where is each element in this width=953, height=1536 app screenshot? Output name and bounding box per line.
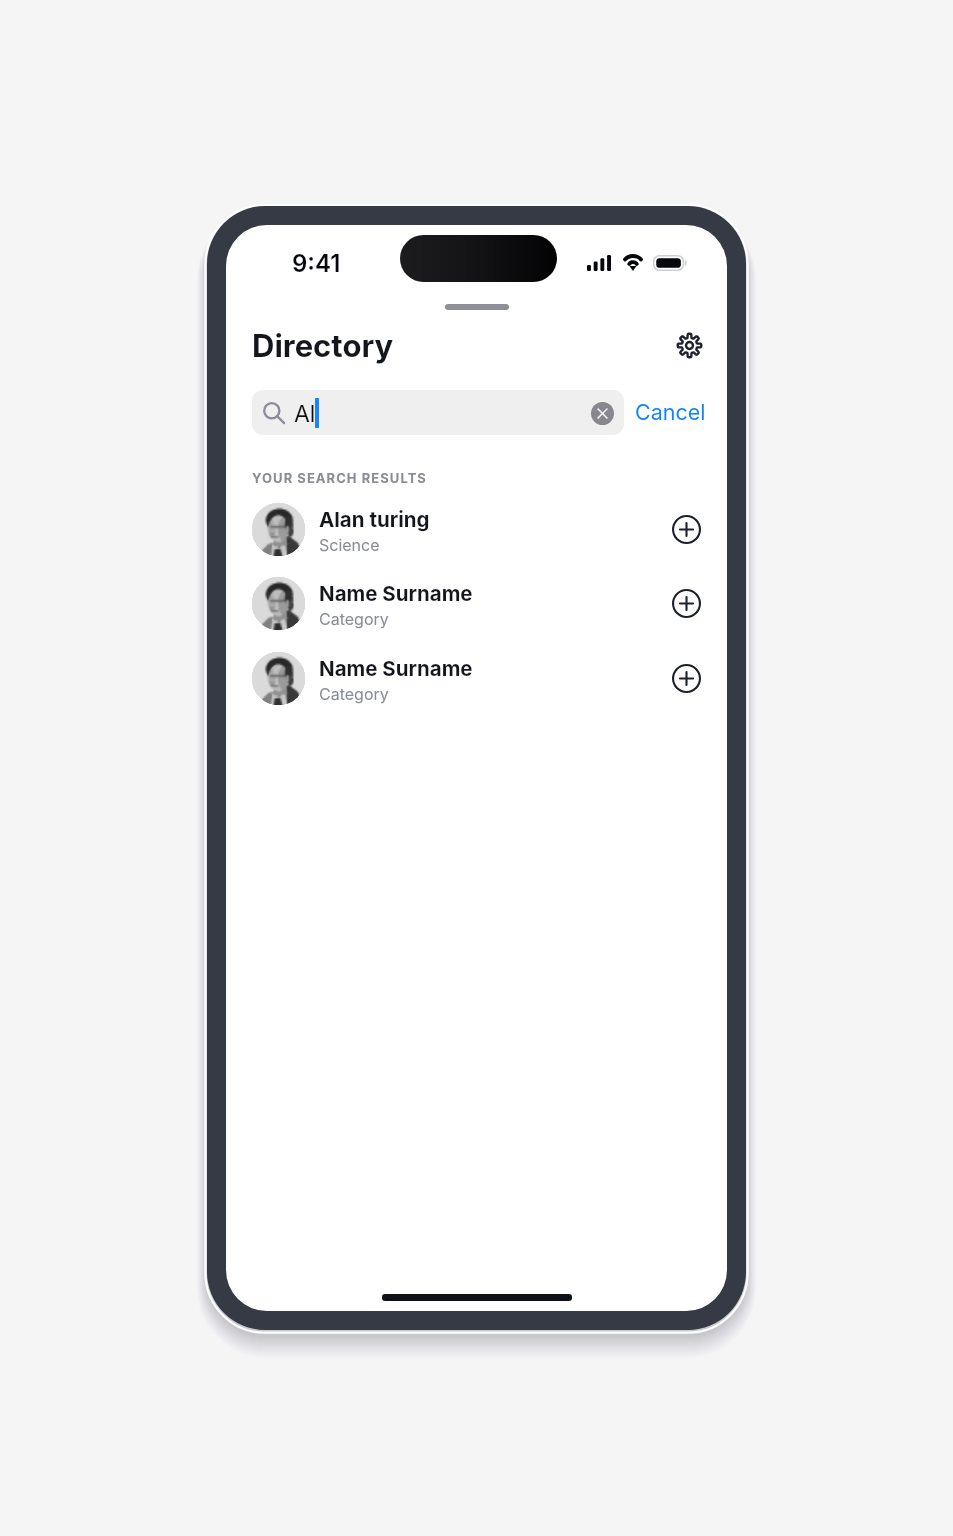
staticText: Directory bbox=[252, 327, 394, 365]
staticText: Name Surname bbox=[319, 581, 473, 606]
button[interactable]: Cancel bbox=[632, 393, 709, 431]
button[interactable]: Name Surname bbox=[226, 651, 727, 725]
button[interactable]: Al bbox=[252, 390, 624, 435]
staticText: Category bbox=[319, 609, 389, 628]
staticText: Cancel bbox=[635, 399, 706, 425]
staticText: Al bbox=[294, 400, 316, 428]
staticText: 9:41 bbox=[292, 249, 341, 278]
button[interactable]: Name Surname bbox=[226, 576, 727, 650]
button[interactable]: Clear search text bbox=[591, 402, 614, 425]
staticText: Name Surname bbox=[319, 656, 473, 681]
staticText: Category bbox=[319, 684, 389, 703]
button[interactable]: Add Name Surname bbox=[668, 660, 705, 697]
button[interactable]: Settings bbox=[669, 325, 709, 365]
staticText: Science bbox=[319, 535, 380, 554]
button[interactable]: Add Name Surname bbox=[668, 585, 705, 622]
button[interactable]: Add Alan turing bbox=[668, 511, 705, 548]
staticText: Alan turing bbox=[319, 507, 430, 532]
staticText: YOUR SEARCH RESULTS bbox=[252, 470, 427, 486]
button[interactable]: Alan turing bbox=[226, 502, 727, 576]
